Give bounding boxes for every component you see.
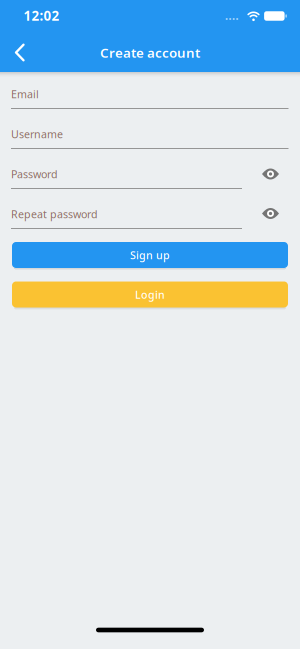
button[interactable]: Show password: [262, 168, 279, 179]
secureTextField[interactable]: Repeat password: [11, 207, 289, 229]
button[interactable]: Login: [12, 281, 288, 307]
staticText: Sign up: [130, 248, 170, 262]
staticText: Username: [11, 127, 63, 141]
button[interactable]: Sign up: [12, 242, 288, 268]
secureTextField[interactable]: Password: [11, 167, 289, 189]
staticText: 12:02: [23, 7, 59, 24]
staticText: Email: [11, 87, 39, 101]
staticText: Create account: [100, 44, 200, 61]
textField[interactable]: Username: [11, 127, 289, 149]
staticText: Login: [135, 287, 165, 302]
staticText: Password: [11, 167, 58, 181]
button[interactable]: Show repeat password: [262, 208, 279, 219]
staticText: Repeat password: [11, 207, 98, 221]
textField[interactable]: Email: [11, 87, 289, 109]
button[interactable]: Back: [14, 43, 26, 61]
